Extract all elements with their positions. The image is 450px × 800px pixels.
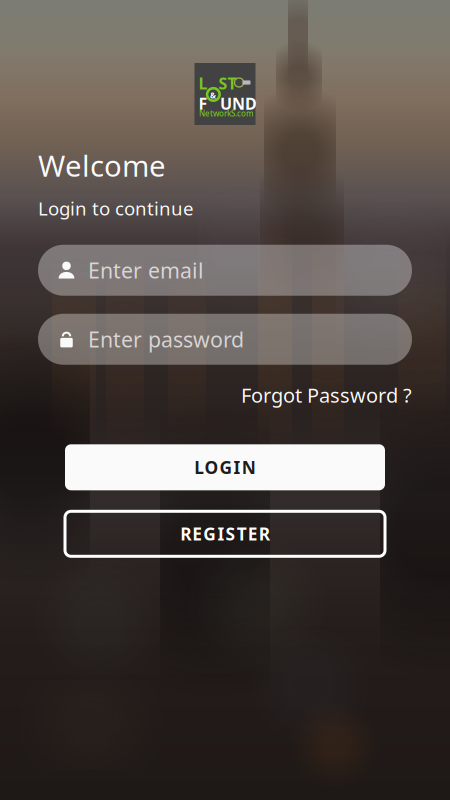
staticText: & <box>210 90 216 101</box>
staticText: REGISTER <box>180 522 270 545</box>
staticText: LOGIN <box>194 456 256 479</box>
button[interactable]: REGISTER <box>65 511 385 556</box>
staticText: L <box>198 73 207 94</box>
button[interactable]: LOGIN <box>65 444 385 490</box>
button[interactable]: Enter email <box>38 245 412 296</box>
staticText: Enter email <box>88 256 204 284</box>
staticText: NetworkS.com <box>199 108 254 119</box>
staticText: UND <box>220 93 257 114</box>
staticText: Forgot Password ? <box>241 382 412 408</box>
staticText: Welcome <box>38 146 166 185</box>
button[interactable]: Enter password <box>38 314 412 365</box>
staticText: ST <box>218 73 236 94</box>
staticText: Login to continue <box>38 196 194 221</box>
button[interactable]: Forgot Password ? <box>241 382 412 408</box>
staticText: Enter password <box>88 325 244 353</box>
staticText: F <box>198 93 207 114</box>
